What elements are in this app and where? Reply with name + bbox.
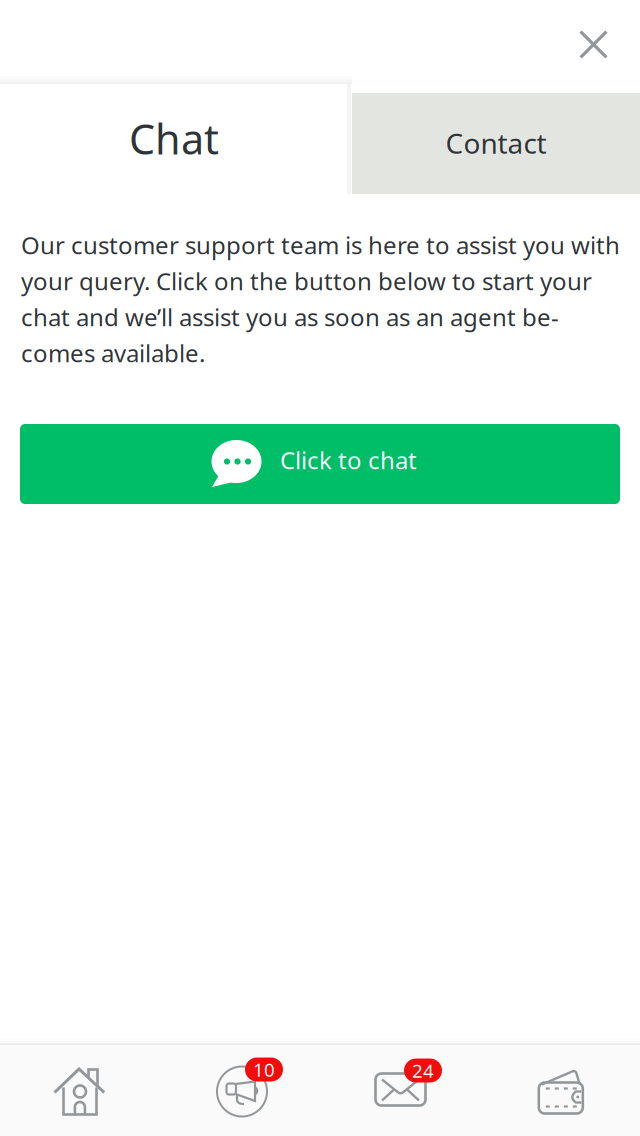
staticText: comes available. bbox=[21, 337, 205, 369]
button[interactable]: Messages bbox=[320, 1045, 480, 1136]
staticText: 10 bbox=[253, 1057, 275, 1082]
button[interactable]: Contact bbox=[352, 93, 640, 194]
staticText: Contact bbox=[445, 124, 546, 162]
button[interactable]: Wallet bbox=[480, 1045, 640, 1136]
staticText: chat and we’ll assist you as soon as an … bbox=[21, 301, 559, 333]
staticText: your query. Click on the button below to… bbox=[21, 265, 592, 297]
staticText: Chat bbox=[129, 111, 219, 166]
button[interactable]: Click to chat bbox=[20, 424, 620, 504]
staticText: Click to chat bbox=[280, 444, 417, 476]
button[interactable]: Announcements bbox=[160, 1045, 320, 1136]
button[interactable]: Chat bbox=[0, 84, 352, 200]
button[interactable]: Close bbox=[559, 10, 640, 74]
button[interactable]: Home bbox=[0, 1045, 160, 1136]
staticText: Our customer support team is here to ass… bbox=[21, 229, 620, 261]
staticText: 24 bbox=[412, 1058, 434, 1083]
